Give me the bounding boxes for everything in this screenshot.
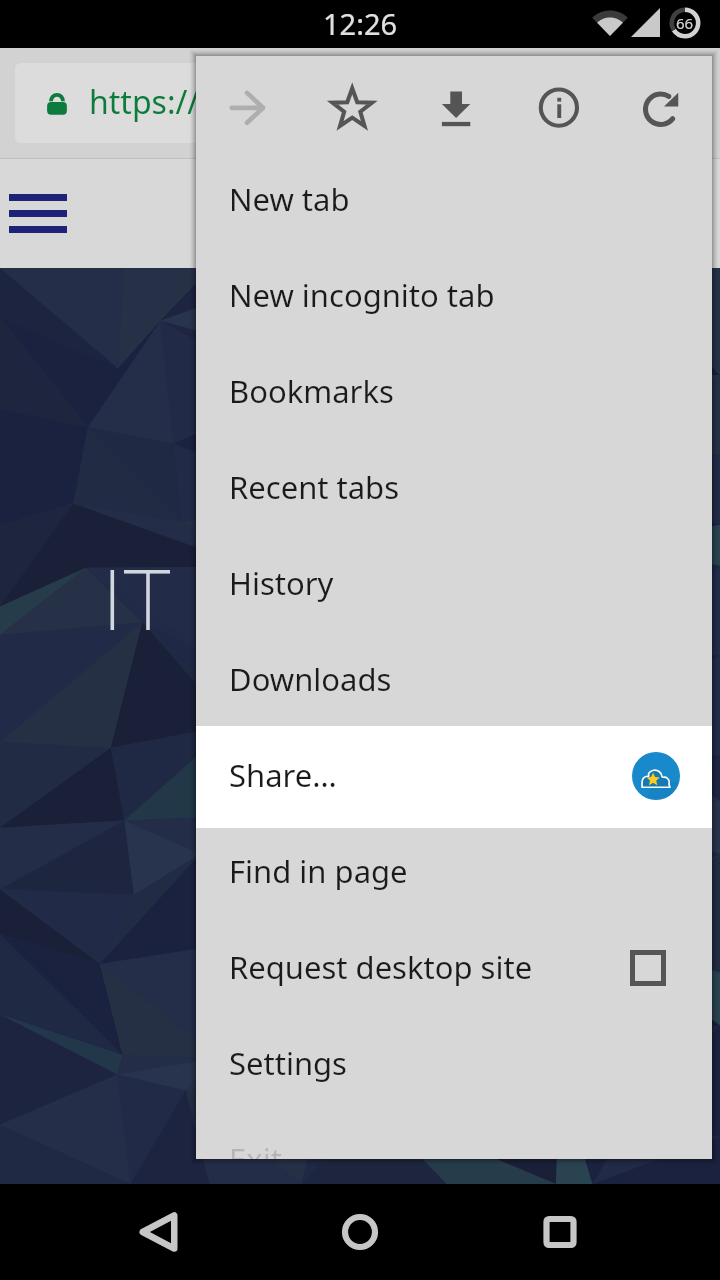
button[interactable]: Request desktop site	[196, 928, 712, 1024]
staticText: New incognito tab	[229, 274, 495, 316]
button[interactable]: New incognito tab	[196, 256, 712, 352]
staticText: History	[229, 562, 334, 604]
button[interactable]: History	[196, 544, 712, 640]
button[interactable]: Reload	[609, 56, 712, 160]
staticText: Downloads	[229, 658, 392, 700]
button[interactable]: New tab	[196, 160, 712, 256]
staticText: 12:26	[323, 4, 398, 43]
button[interactable]: Downloads	[196, 640, 712, 736]
button[interactable]: Settings	[196, 1024, 712, 1120]
button[interactable]: Recent tabs	[196, 448, 712, 544]
staticText: Request desktop site	[229, 946, 533, 988]
staticText: Share…	[229, 754, 337, 796]
button[interactable]: Back	[112, 1184, 208, 1280]
staticText: Recent tabs	[229, 466, 400, 508]
button[interactable]: Page info	[506, 56, 609, 160]
button[interactable]: Open navigation menu	[0, 184, 76, 244]
staticText: Bookmarks	[229, 370, 394, 412]
button[interactable]: Bookmark	[300, 56, 403, 160]
button[interactable]: https://	[15, 63, 455, 143]
button[interactable]: Bookmarks	[196, 352, 712, 448]
staticText: Exit	[229, 1138, 282, 1159]
button[interactable]: Find in page	[196, 832, 712, 928]
button[interactable]: Download	[403, 56, 506, 160]
button[interactable]: Share…	[196, 736, 712, 832]
staticText: 66	[676, 13, 694, 33]
staticText: New tab	[229, 178, 350, 220]
staticText: Settings	[229, 1042, 347, 1084]
button[interactable]: Forward	[196, 56, 300, 160]
button[interactable]: Recents	[512, 1184, 608, 1280]
button[interactable]: Home	[312, 1184, 408, 1280]
staticText: Find in page	[229, 850, 408, 892]
staticText: https://	[89, 80, 200, 124]
